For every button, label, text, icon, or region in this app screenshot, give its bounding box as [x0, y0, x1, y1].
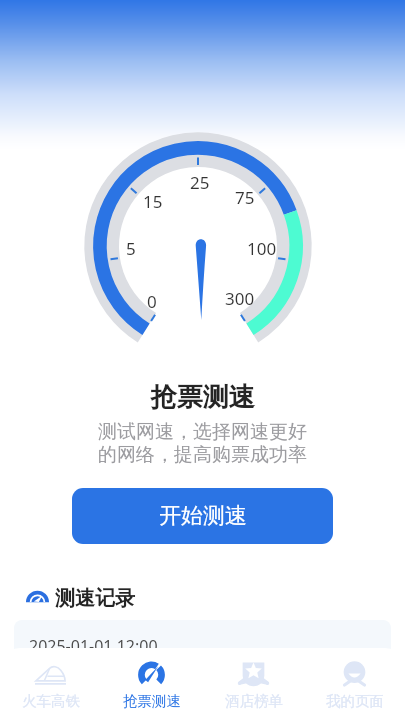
button[interactable]: 2025-01-01 12:00: [14, 620, 391, 700]
staticText: 开始测速: [159, 502, 247, 530]
button[interactable]: 酒店榜单: [203, 648, 304, 720]
staticText: 测试网速，选择网速更好 的网络，提高购票成功率: [0, 420, 405, 467]
staticText: 抢票测速: [0, 381, 405, 414]
staticText: 0: [147, 290, 157, 313]
other: 火车高铁: [35, 662, 66, 685]
staticText: 2025-01-01 12:00: [29, 635, 158, 657]
other: 抢票测速: [136, 662, 167, 685]
button[interactable]: 测速记录: [26, 586, 135, 611]
staticText: 我的页面: [326, 692, 384, 710]
staticText: 300: [225, 287, 255, 310]
staticText: 75: [235, 186, 255, 209]
staticText: 酒店榜单: [225, 692, 283, 710]
button[interactable]: 抢票测速: [101, 648, 202, 720]
other: 酒店榜单: [238, 662, 269, 685]
button[interactable]: 开始测速: [72, 488, 333, 544]
staticText: 25: [190, 171, 210, 194]
button[interactable]: 我的页面: [304, 648, 405, 720]
staticText: 100: [247, 237, 277, 260]
staticText: 15: [143, 190, 163, 213]
staticText: 测速记录: [55, 586, 135, 611]
staticText: 5: [126, 237, 136, 260]
button[interactable]: 火车高铁: [0, 648, 101, 720]
staticText: 抢票测速: [123, 692, 181, 710]
other: 我的页面: [339, 662, 370, 685]
staticText: 火车高铁: [22, 692, 80, 710]
